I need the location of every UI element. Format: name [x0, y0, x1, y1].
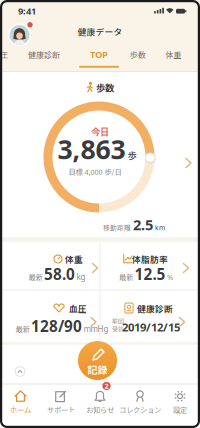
- staticText: 受診: [112, 324, 124, 333]
- button[interactable]: 記録: [78, 341, 117, 380]
- staticText: 移動距離: [103, 222, 131, 232]
- staticText: 設定: [173, 404, 187, 415]
- staticText: mmHg: [83, 323, 108, 334]
- button[interactable]: 体重: [0, 242, 100, 290]
- staticText: 体重: [165, 49, 181, 60]
- staticText: 歩数: [96, 81, 114, 94]
- staticText: 歩数: [130, 49, 146, 60]
- button[interactable]: 設定: [161, 388, 199, 417]
- staticText: 最新: [28, 271, 42, 282]
- staticText: 128/90: [31, 316, 82, 336]
- button[interactable]: 圧: [0, 49, 8, 60]
- staticText: 健康診断: [28, 49, 60, 60]
- staticText: お知らせ: [86, 404, 114, 415]
- staticText: 9:41: [18, 5, 36, 17]
- staticText: 歩: [127, 148, 136, 162]
- staticText: 記録: [87, 362, 107, 377]
- staticText: 健康診断: [137, 302, 173, 315]
- staticText: 目標 4,000 歩/日: [68, 166, 121, 177]
- button[interactable]: 歩数詳細: [185, 157, 192, 168]
- staticText: コレクション: [119, 404, 161, 415]
- button[interactable]: 体脂肪率: [100, 242, 200, 290]
- staticText: 2019/12/15: [122, 319, 180, 335]
- staticText: 2: [104, 381, 108, 391]
- staticText: 58.0: [44, 264, 75, 284]
- staticText: 体脂肪率: [132, 253, 168, 265]
- staticText: 12.5: [134, 264, 165, 284]
- staticText: ホーム: [10, 404, 31, 415]
- staticText: 健康データ: [77, 25, 122, 38]
- button[interactable]: 健康診断: [100, 291, 200, 344]
- staticText: TOP: [90, 48, 108, 61]
- button[interactable]: 体重: [165, 49, 181, 60]
- staticText: 血圧: [69, 302, 87, 315]
- staticText: km: [155, 223, 165, 232]
- button[interactable]: コレクション: [118, 388, 162, 417]
- button[interactable]: お知らせ: [81, 388, 119, 417]
- button[interactable]: 歩数: [130, 49, 146, 60]
- staticText: 2.5: [133, 214, 153, 234]
- staticText: 圧: [0, 49, 8, 60]
- staticText: 3,863: [57, 131, 125, 167]
- staticText: 前回: [112, 317, 124, 325]
- staticText: 今日: [91, 125, 109, 138]
- button[interactable]: 閉じる: [15, 366, 25, 377]
- staticText: kg: [76, 271, 85, 282]
- staticText: 最新: [119, 271, 133, 282]
- staticText: %: [167, 272, 173, 282]
- button[interactable]: 血圧: [0, 291, 100, 344]
- button[interactable]: 健康診断: [28, 49, 60, 60]
- button[interactable]: ホーム: [1, 388, 39, 417]
- button[interactable]: TOP: [90, 48, 108, 61]
- staticText: サポート: [47, 404, 75, 415]
- staticText: 体重: [65, 253, 83, 265]
- button[interactable]: プロフィール: [8, 23, 31, 46]
- staticText: 最新: [15, 323, 29, 334]
- button[interactable]: サポート: [42, 388, 80, 417]
